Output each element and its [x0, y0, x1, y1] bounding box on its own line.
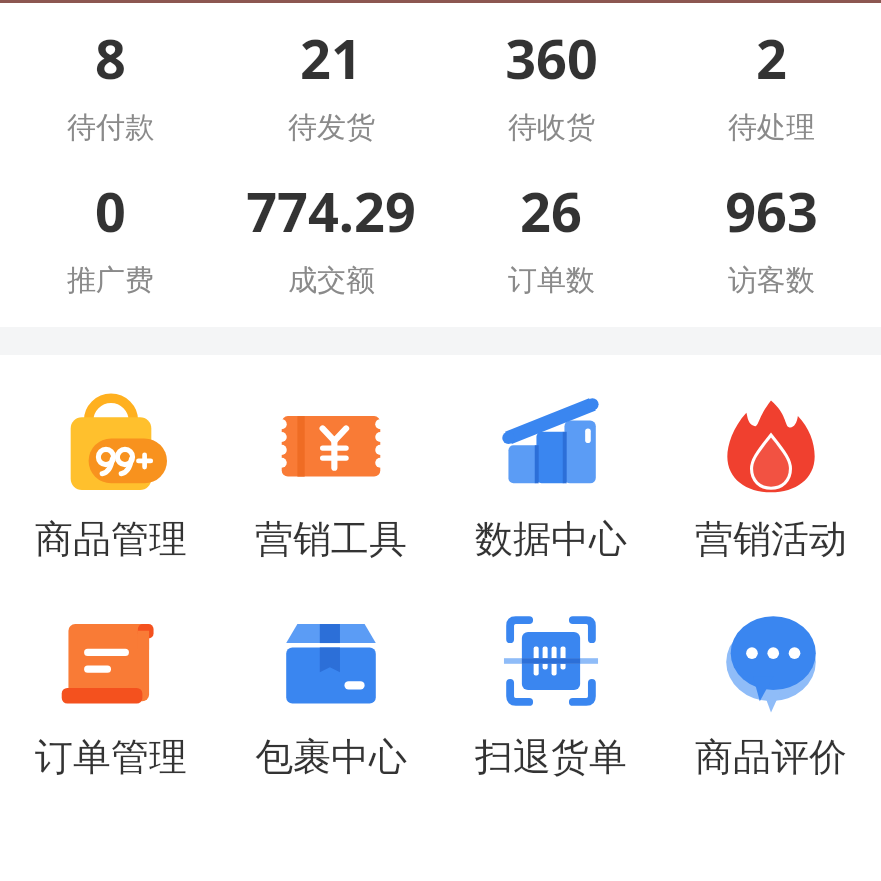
staticText: 0	[95, 174, 126, 248]
staticText: 待付款	[67, 109, 154, 146]
staticText: 待收货	[508, 109, 595, 146]
staticText: 订单管理	[35, 733, 187, 781]
staticText: 成交额	[288, 262, 375, 299]
staticText: 21	[300, 21, 362, 95]
staticText: 360	[505, 21, 598, 95]
staticText: 963	[725, 174, 818, 248]
staticText: 扫退货单	[475, 733, 627, 781]
staticText: 包裹中心	[255, 733, 407, 781]
staticText: 8	[95, 21, 126, 95]
staticText: 营销工具	[255, 515, 407, 563]
button[interactable]: 26	[441, 172, 661, 301]
other: 营销工具	[275, 387, 387, 499]
staticText: 订单数	[508, 262, 595, 299]
other: 商品管理	[55, 387, 167, 499]
button[interactable]: 2	[661, 19, 881, 148]
button[interactable]: 360	[441, 19, 661, 148]
button[interactable]: 0	[0, 172, 221, 301]
button[interactable]: 774.29	[221, 172, 441, 301]
staticText: 访客数	[728, 262, 815, 299]
button[interactable]: 营销活动	[661, 385, 881, 565]
staticText: 774.29	[246, 174, 416, 248]
staticText: 数据中心	[475, 515, 627, 563]
other: 订单管理	[55, 605, 167, 717]
button[interactable]: 963	[661, 172, 881, 301]
button[interactable]: 商品评价	[661, 603, 881, 783]
other: 商品评价	[715, 605, 827, 717]
other: 包裹中心	[275, 605, 387, 717]
staticText: 商品评价	[695, 733, 847, 781]
staticText: 26	[520, 174, 582, 248]
staticText: 2	[756, 21, 787, 95]
other: 扫退货单	[495, 605, 607, 717]
button[interactable]: 数据中心	[441, 385, 661, 565]
button[interactable]: 21	[221, 19, 441, 148]
staticText: 推广费	[67, 262, 154, 299]
button[interactable]: 包裹中心	[221, 603, 441, 783]
button[interactable]: 营销工具	[221, 385, 441, 565]
staticText: 营销活动	[695, 515, 847, 563]
other: 营销活动	[715, 387, 827, 499]
staticText: 商品管理	[35, 515, 187, 563]
staticText: 待处理	[728, 109, 815, 146]
button[interactable]: 扫退货单	[441, 603, 661, 783]
staticText: 待发货	[288, 109, 375, 146]
button[interactable]: 订单管理	[0, 603, 221, 783]
button[interactable]: 8	[0, 19, 221, 148]
button[interactable]: 商品管理	[0, 385, 221, 565]
other: 数据中心	[495, 387, 607, 499]
